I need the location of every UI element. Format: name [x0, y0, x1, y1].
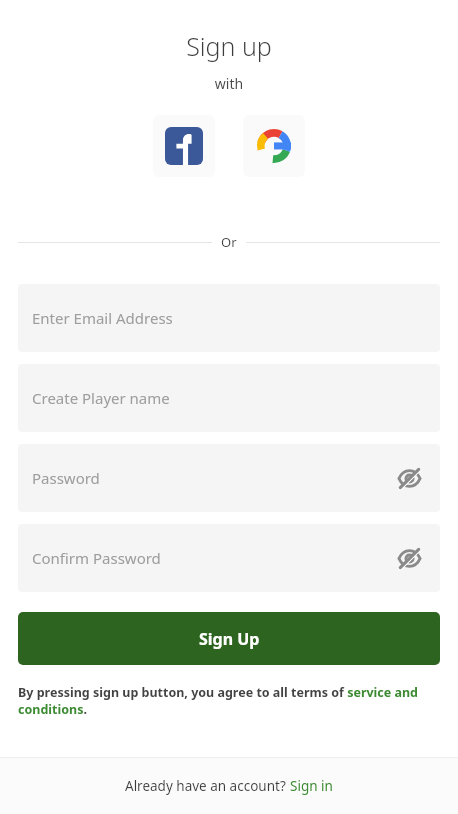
button[interactable]: Password [18, 444, 440, 512]
button[interactable]: Enter Email Address [18, 284, 440, 352]
staticText: Sign up [0, 29, 458, 63]
staticText: Sign Up [199, 628, 260, 650]
button[interactable]: Confirm Password [18, 524, 440, 592]
staticText: Sign in [290, 777, 333, 795]
button[interactable]: Already have an account? [125, 777, 333, 795]
button[interactable]: Sign Up [18, 612, 440, 665]
staticText: Enter Email Address [32, 308, 173, 328]
button[interactable]: Sign up with Facebook [153, 115, 215, 177]
staticText: Or [221, 233, 237, 251]
button[interactable]: Show password [394, 543, 424, 573]
staticText: Password [32, 468, 100, 488]
button[interactable]: Show password [394, 463, 424, 493]
staticText: with [0, 74, 458, 93]
button[interactable]: By pressing sign up button, you agree to… [18, 684, 440, 718]
staticText: Already have an account? [125, 777, 290, 795]
button[interactable]: Create Player name [18, 364, 440, 432]
staticText: Confirm Password [32, 548, 161, 568]
button[interactable]: Sign up with Google [243, 115, 305, 177]
staticText: Create Player name [32, 388, 170, 408]
